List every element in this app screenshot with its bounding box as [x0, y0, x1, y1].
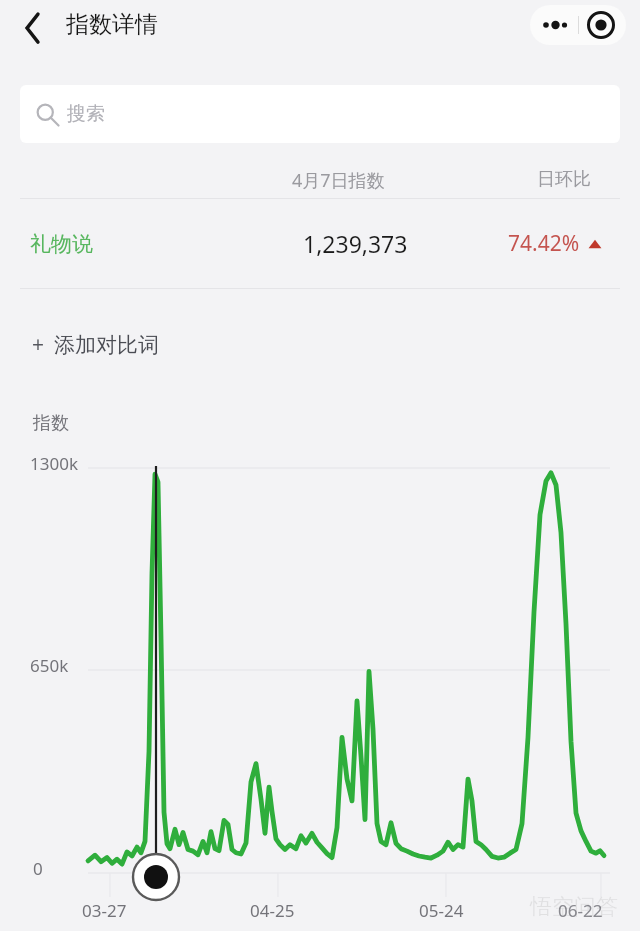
staticText: 搜索 — [67, 102, 105, 126]
button[interactable]: + — [26, 322, 165, 367]
button[interactable]: More options — [530, 5, 578, 45]
button[interactable]: 礼物说 — [0, 199, 640, 288]
staticText: 650k — [30, 654, 69, 677]
staticText: 4月7日指数 — [292, 168, 385, 193]
staticText: + — [32, 330, 45, 359]
button[interactable]: 搜索 — [20, 85, 620, 143]
staticText: 指数详情 — [66, 10, 158, 39]
button[interactable]: Back — [10, 6, 56, 52]
staticText: 添加对比词 — [54, 332, 159, 358]
staticText: 05-24 — [419, 899, 464, 922]
staticText: 04-25 — [250, 899, 295, 922]
staticText: 指数 — [33, 412, 69, 435]
staticText: 日环比 — [537, 168, 591, 191]
staticText: 03-27 — [82, 899, 127, 922]
button[interactable]: Close mini program — [578, 5, 626, 45]
staticText: 悟空问答 — [530, 893, 618, 921]
staticText: 1,239,373 — [303, 228, 408, 259]
staticText: 0 — [33, 857, 43, 880]
staticText: 74.42% — [508, 229, 580, 258]
staticText: 礼物说 — [30, 231, 93, 257]
staticText: 06-22 — [558, 899, 603, 922]
staticText: 1300k — [30, 452, 78, 475]
